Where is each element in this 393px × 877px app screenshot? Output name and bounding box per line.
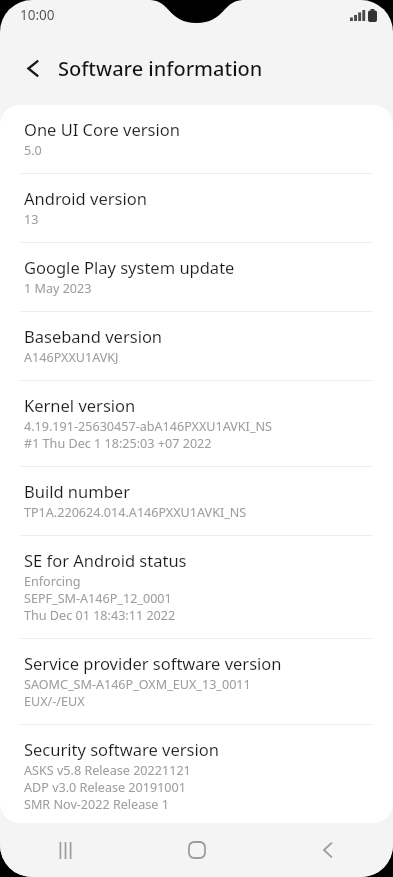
staticText: Google Play system update [24,256,235,278]
staticText: EUX/-/EUX [24,693,85,710]
button[interactable]: Recent apps [0,823,131,877]
button[interactable]: Google Play system update [0,243,393,311]
button[interactable]: Service provider software version [0,639,393,724]
staticText: SMR Nov-2022 Release 1 [24,796,169,809]
button[interactable]: Kernel version [0,381,393,466]
staticText: Software information [58,55,263,82]
staticText: 13 [24,211,39,228]
staticText: 5.0 [24,142,42,159]
staticText: #1 Thu Dec 1 18:25:03 +07 2022 [24,435,212,452]
staticText: TP1A.220624.014.A146PXXU1AVKI_NS [24,504,247,521]
staticText: SEPF_SM-A146P_12_0001 [24,590,172,607]
staticText: SAOMC_SM-A146P_OXM_EUX_13_0011 [24,676,251,693]
staticText: A146PXXU1AVKJ [24,349,119,366]
button[interactable]: SE for Android status [0,536,393,638]
staticText: 4.19.191-25630457-abA146PXXU1AVKI_NS [24,418,272,435]
button[interactable]: Back [11,46,55,90]
button[interactable]: One UI Core version [0,105,393,173]
button[interactable]: Security software version [0,725,393,823]
staticText: Android version [24,187,147,209]
staticText: Thu Dec 01 18:43:11 2022 [24,607,176,624]
button[interactable]: Home [131,823,262,877]
staticText: 10:00 [20,6,55,24]
staticText: Service provider software version [24,652,282,674]
button[interactable]: Android version [0,174,393,242]
staticText: ADP v3.0 Release 20191001 [24,779,186,796]
staticText: Baseband version [24,325,163,347]
staticText: SE for Android status [24,549,187,571]
staticText: Security software version [24,738,219,760]
staticText: 1 May 2023 [24,280,92,297]
staticText: Build number [24,480,130,502]
staticText: ASKS v5.8 Release 20221121 [24,762,191,779]
staticText: One UI Core version [24,118,180,140]
button[interactable]: Baseband version [0,312,393,380]
staticText: Kernel version [24,394,136,416]
button[interactable]: Build number [0,467,393,535]
staticText: Enforcing [24,573,81,590]
button[interactable]: Back [262,823,393,877]
